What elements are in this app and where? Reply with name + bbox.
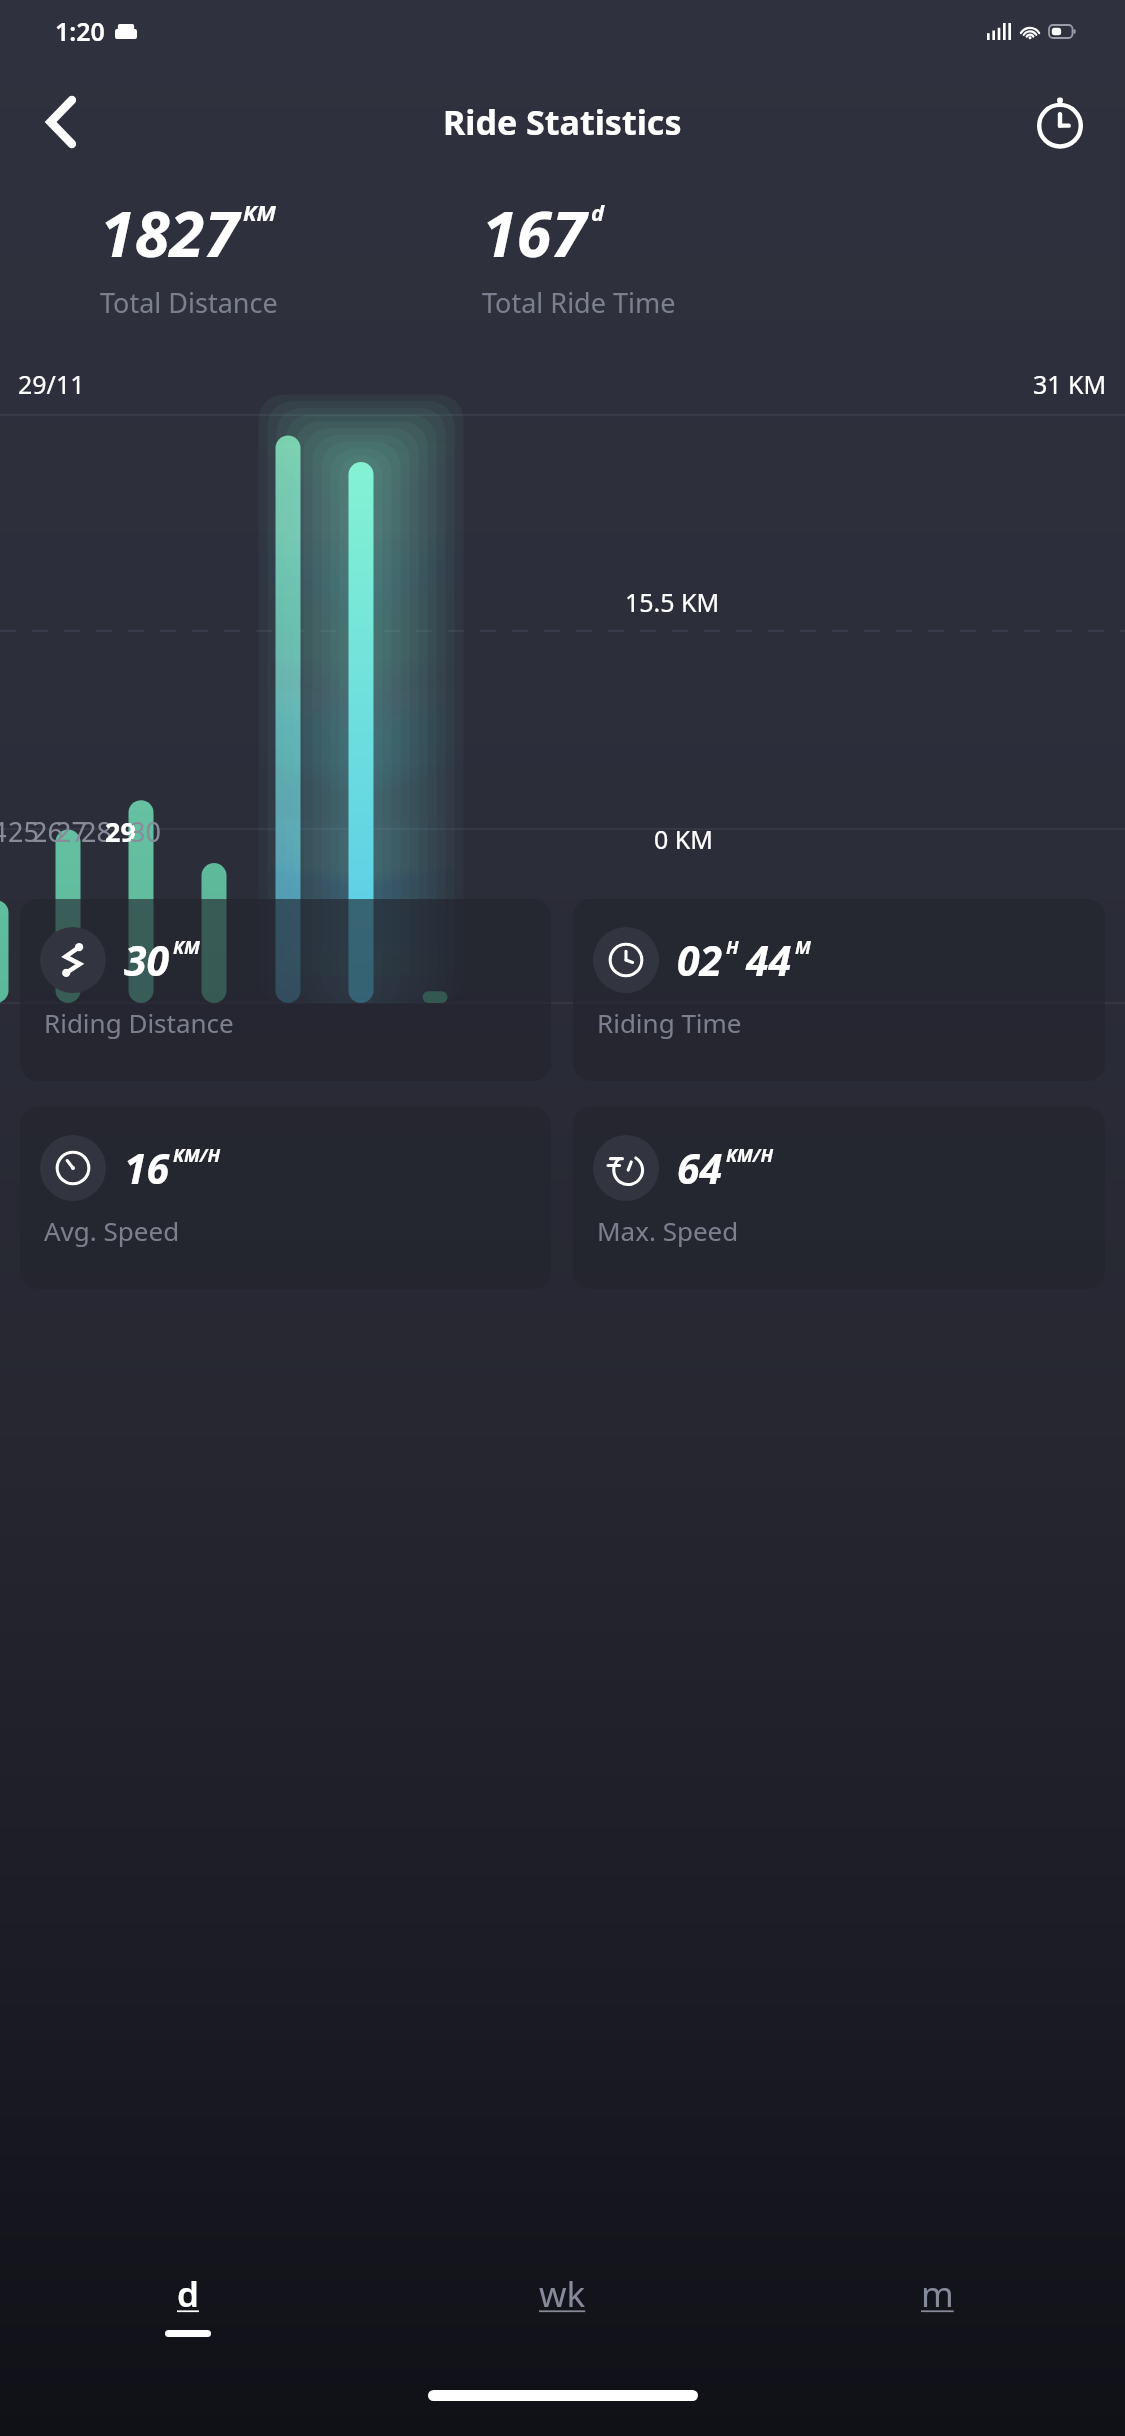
staticText: Riding Time (597, 1005, 742, 1040)
button[interactable]: wk (375, 2248, 750, 2380)
staticText: wk (539, 2270, 586, 2318)
staticText: m (921, 2270, 954, 2318)
staticText: KM (173, 935, 200, 960)
staticText: d (591, 197, 605, 227)
button[interactable]: m (750, 2248, 1125, 2380)
staticText: 167 (482, 190, 587, 276)
staticText: 30 (124, 932, 170, 988)
staticText: KM/H (726, 1143, 774, 1168)
button[interactable]: Back (22, 83, 100, 161)
button[interactable]: 26 (17, 807, 77, 855)
staticText: M (795, 935, 811, 960)
button[interactable]: Timer (1021, 83, 1099, 161)
staticText: 0 KM (654, 822, 713, 856)
staticText: 1827 (100, 190, 239, 276)
staticText: Max. Speed (597, 1213, 739, 1248)
staticText: 31 KM (1033, 367, 1107, 401)
staticText: KM/H (173, 1143, 221, 1168)
staticText: 16 (124, 1140, 170, 1196)
staticText: 25 (8, 813, 39, 850)
staticText: 44 (746, 932, 792, 988)
staticText: 27 (56, 813, 87, 850)
staticText: H (726, 935, 739, 960)
staticText: Total Ride Time (482, 284, 676, 321)
button[interactable]: 02 (573, 899, 1105, 1081)
button[interactable]: 30 (115, 807, 175, 855)
button[interactable]: 64 (573, 1107, 1105, 1289)
staticText: Avg. Speed (44, 1213, 180, 1248)
button[interactable]: 28 (66, 807, 126, 855)
button[interactable]: 30 (20, 899, 551, 1081)
button[interactable]: 25 (0, 807, 53, 855)
staticText: 29 (105, 813, 136, 850)
button[interactable]: 27 (41, 807, 101, 855)
staticText: 64 (677, 1140, 723, 1196)
staticText: Ride Statistics (443, 99, 682, 145)
staticText: 28 (81, 813, 112, 850)
staticText: d (177, 2270, 199, 2318)
staticText: 1:20 (55, 14, 105, 48)
button[interactable]: d (0, 2248, 375, 2380)
staticText: 4 (0, 813, 7, 850)
button[interactable]: 4 (0, 807, 29, 855)
staticText: 30 (130, 813, 161, 850)
staticText: KM (243, 197, 276, 227)
staticText: 29/11 (18, 367, 85, 401)
staticText: Total Distance (100, 284, 278, 321)
staticText: 26 (32, 813, 63, 850)
staticText: 15.5 KM (625, 585, 720, 619)
button[interactable]: 29 (90, 807, 150, 855)
button[interactable]: 16 (20, 1107, 551, 1289)
staticText: 02 (677, 932, 723, 988)
staticText: Riding Distance (44, 1005, 234, 1040)
